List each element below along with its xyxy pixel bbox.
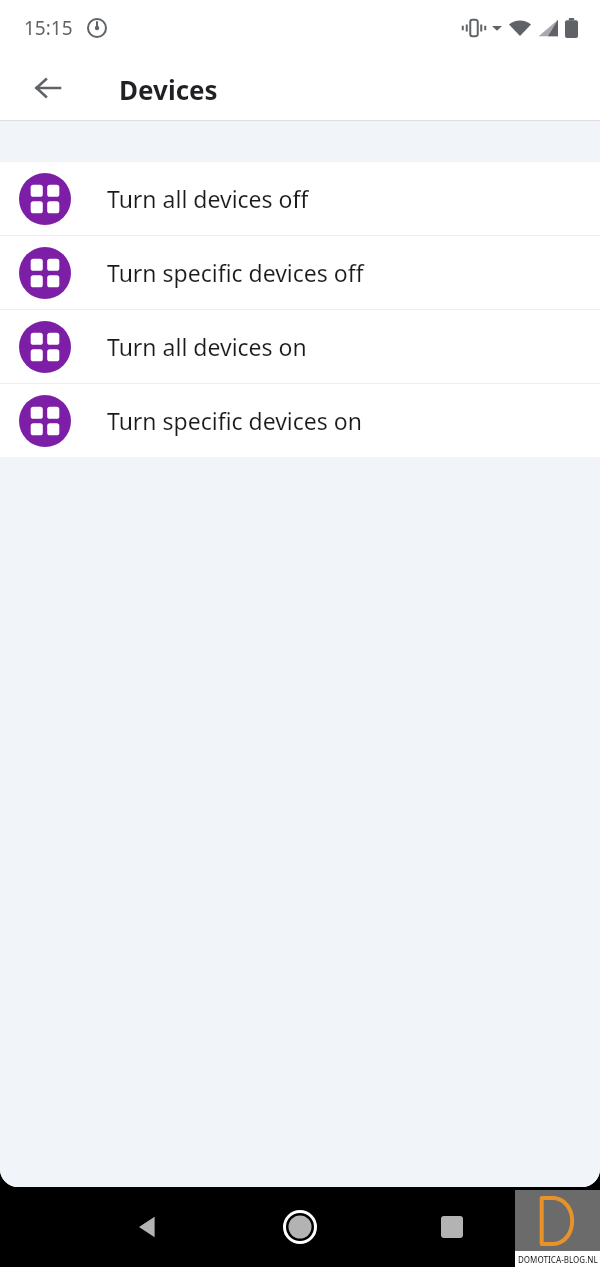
button[interactable]: Recent apps [424, 1199, 480, 1255]
staticText: DOMOTICA-BLOG.NL [518, 1254, 598, 1265]
staticText: Turn specific devices off [107, 257, 364, 288]
button[interactable]: Navigate up [20, 60, 76, 116]
staticText: Turn all devices off [107, 183, 309, 214]
staticText: Turn all devices on [107, 331, 307, 362]
button[interactable]: Home [270, 1197, 330, 1257]
button[interactable]: Turn all devices on [0, 310, 600, 383]
staticText: Turn specific devices on [107, 405, 362, 436]
button[interactable]: Turn specific devices on [0, 384, 600, 457]
button[interactable]: Turn all devices off [0, 162, 600, 235]
button[interactable]: Back [120, 1199, 176, 1255]
staticText: 15:15 [24, 15, 73, 41]
staticText: Devices [119, 72, 218, 107]
button[interactable]: Turn specific devices off [0, 236, 600, 309]
